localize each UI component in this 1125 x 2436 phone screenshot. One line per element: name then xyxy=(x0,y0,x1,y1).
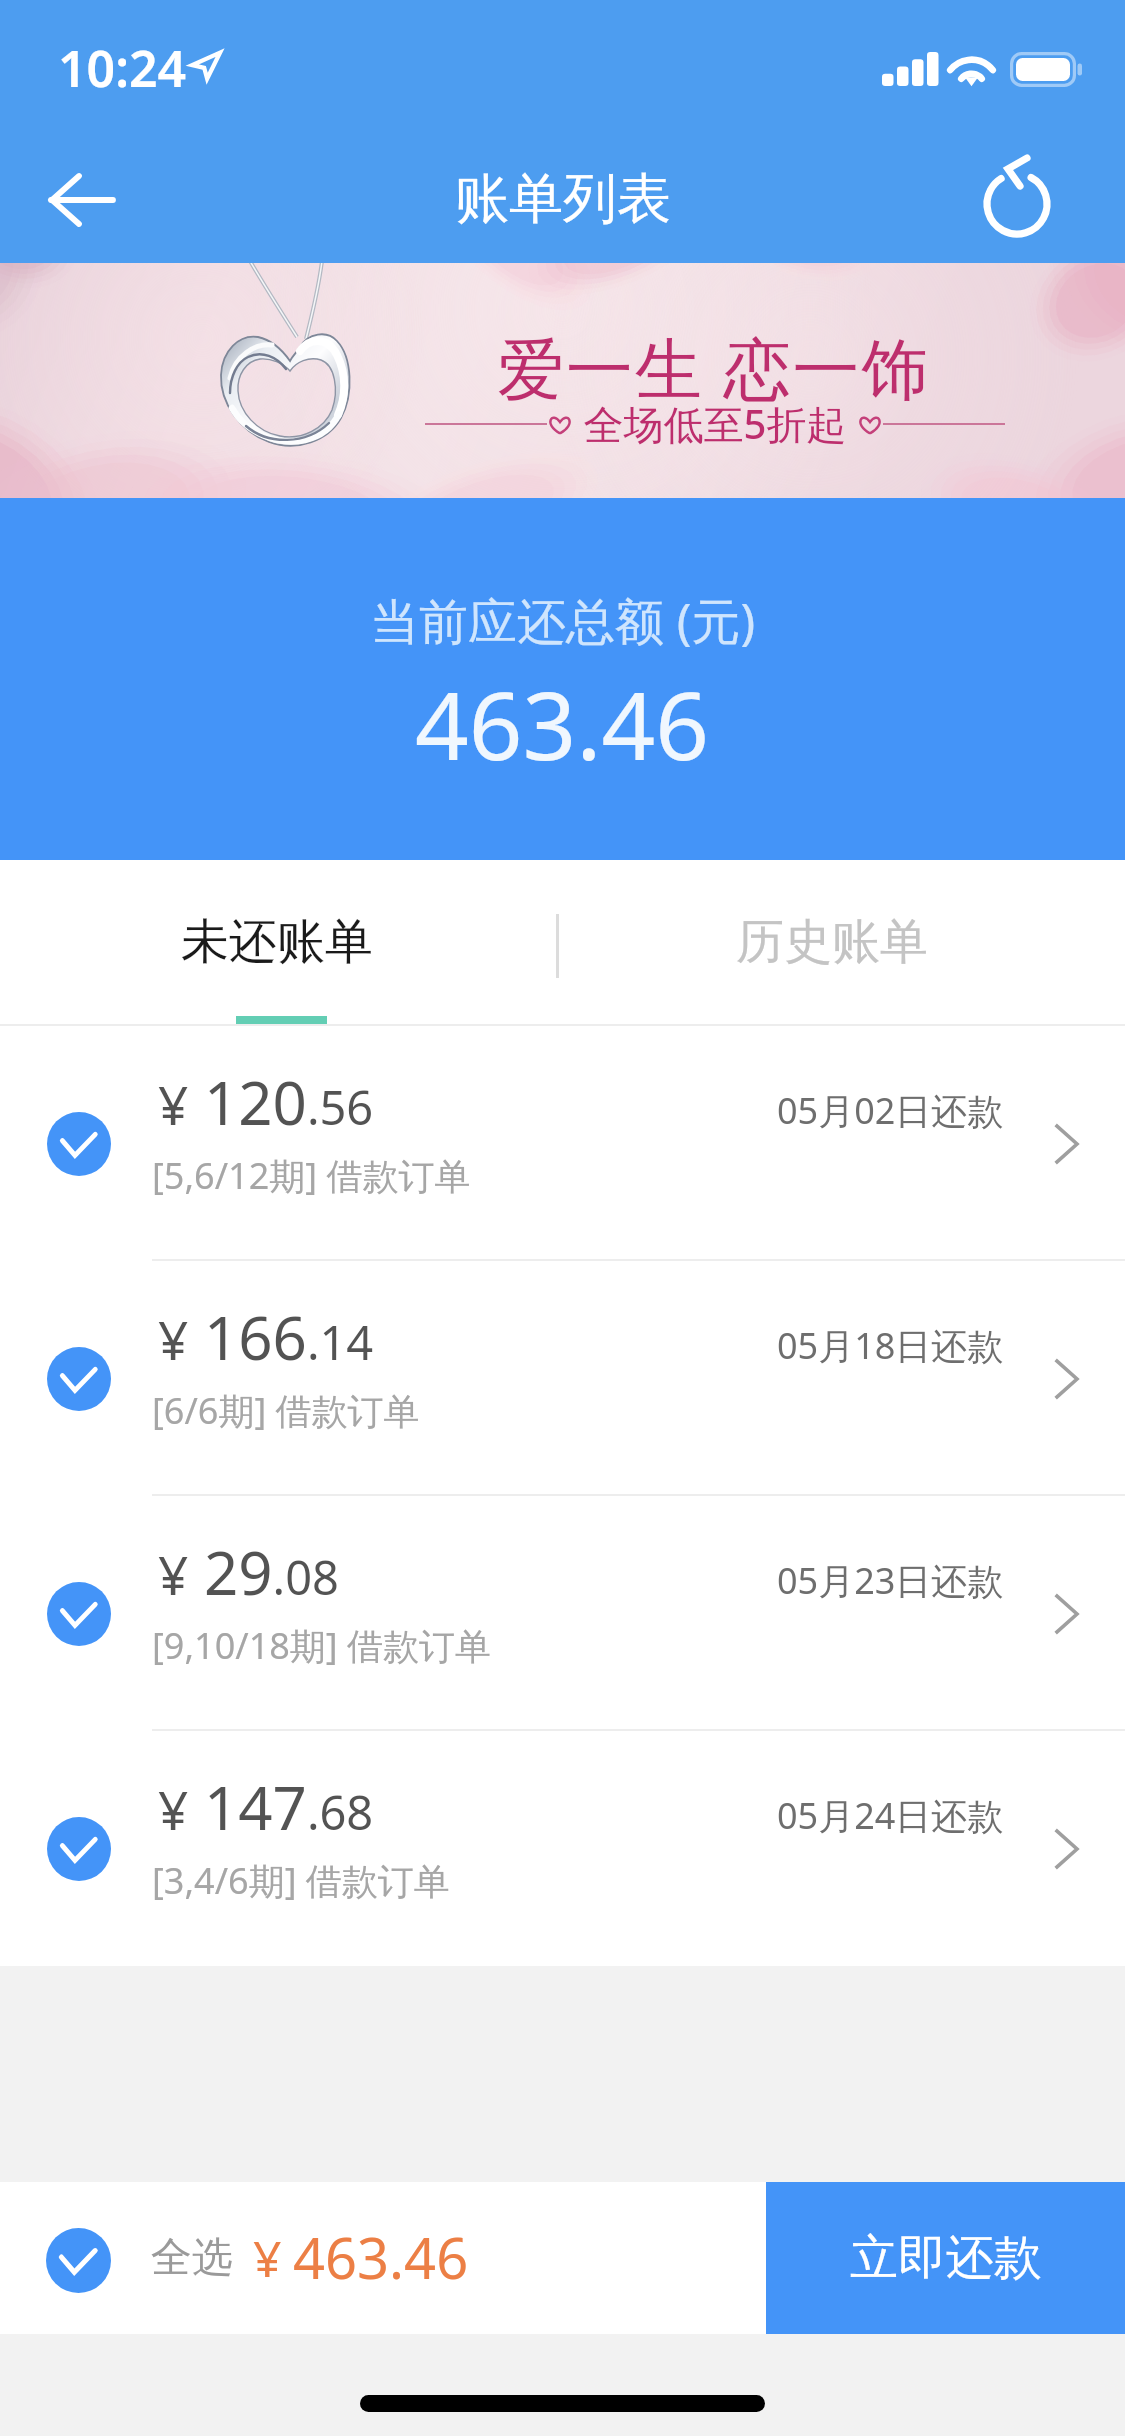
staticText: ¥ 147.68 xyxy=(158,1766,374,1848)
staticText: 05月02日还款 xyxy=(777,1086,1004,1135)
button[interactable]: Select bill xyxy=(21,1321,137,1437)
button[interactable] xyxy=(0,2184,236,2336)
staticText: 05月18日还款 xyxy=(777,1321,1004,1370)
staticText: 05月24日还款 xyxy=(777,1791,1004,1840)
button[interactable]: Select bill xyxy=(0,1026,1125,1261)
button[interactable]: Select bill xyxy=(21,1556,137,1672)
button[interactable]: 未还账单 xyxy=(0,860,562,1026)
button[interactable]: 立即还款 xyxy=(766,2182,1125,2334)
staticText: [6/6期] 借款订单 xyxy=(152,1386,420,1435)
button[interactable]: Back xyxy=(17,139,147,254)
staticText: ¥ 166.14 xyxy=(158,1296,374,1378)
staticText: 未还账单 xyxy=(181,912,373,972)
button[interactable]: Refresh xyxy=(950,142,1082,252)
staticText: 历史账单 xyxy=(736,912,928,972)
staticText: 05月23日还款 xyxy=(777,1556,1004,1605)
staticText: 账单列表 xyxy=(455,165,671,233)
button[interactable]: Promotion banner xyxy=(0,263,1125,498)
staticText: ¥ 29.08 xyxy=(158,1531,339,1613)
staticText: ¥ 120.56 xyxy=(158,1061,374,1143)
staticText: [5,6/12期] 借款订单 xyxy=(152,1151,471,1200)
staticText: 463.46 xyxy=(293,2219,469,2295)
button[interactable]: Select bill xyxy=(0,1496,1125,1731)
button[interactable]: Select bill xyxy=(21,1791,137,1907)
staticText: 全场低至5折起 xyxy=(573,396,857,451)
staticText: ¥ xyxy=(253,2224,282,2292)
button[interactable]: 历史账单 xyxy=(562,860,1125,1026)
staticText: 10:24 xyxy=(58,34,187,102)
staticText: [9,10/18期] 借款订单 xyxy=(152,1621,492,1670)
staticText: 当前应还总额 (元) xyxy=(370,587,756,654)
staticText: [3,4/6期] 借款订单 xyxy=(152,1856,450,1905)
button[interactable]: Select bill xyxy=(0,1261,1125,1496)
staticText: 立即还款 xyxy=(850,2228,1042,2288)
button[interactable]: Select bill xyxy=(0,1731,1125,1966)
staticText: 463.46 xyxy=(415,660,710,788)
staticText: 全选 xyxy=(151,2232,233,2284)
staticText: 爱一生 恋一饰 xyxy=(497,321,931,413)
button[interactable]: Select bill xyxy=(21,1086,137,1202)
